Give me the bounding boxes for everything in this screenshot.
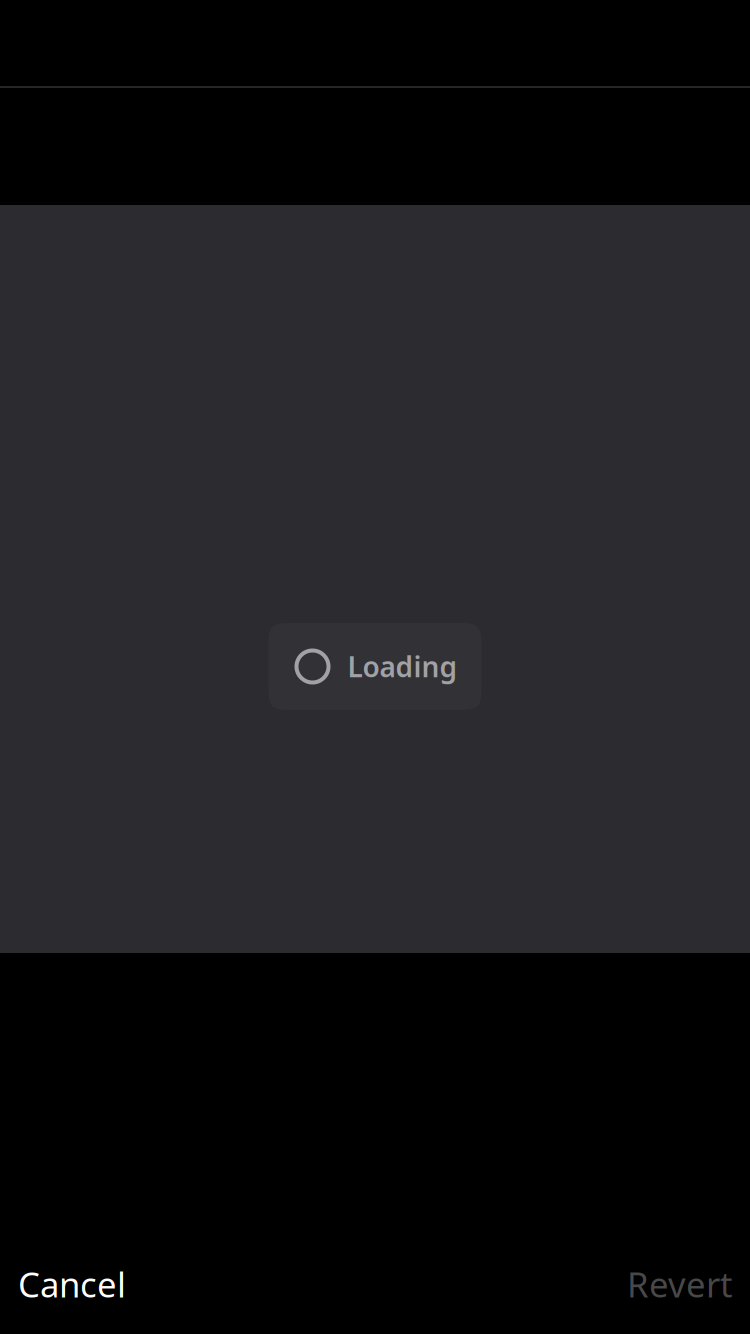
staticText: Revert — [627, 1261, 733, 1307]
button[interactable]: Cancel — [0, 1250, 144, 1318]
button[interactable]: Revert — [610, 1250, 750, 1318]
staticText: Cancel — [18, 1261, 126, 1307]
staticText: Loading — [347, 648, 457, 685]
